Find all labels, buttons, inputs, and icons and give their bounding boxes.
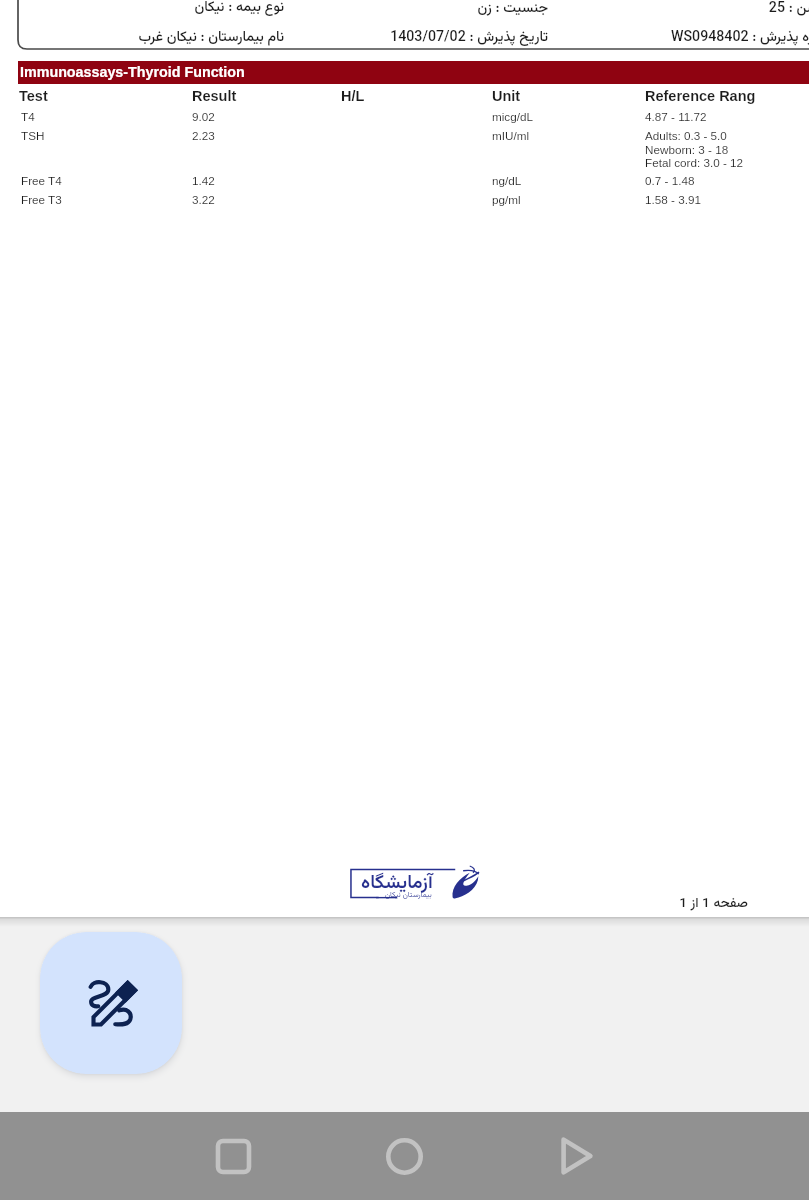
button[interactable]: Recent apps [197,1134,269,1178]
staticText: 4.87 - 11.72 [645,110,707,123]
button[interactable]: Home [368,1134,440,1178]
staticText: نام بیمارستان : نیکان غرب [0,26,284,48]
staticText: ng/dL [492,174,522,187]
staticText: mIU/ml [492,129,530,142]
staticText: بیمارستان نیکان [385,889,432,901]
button[interactable]: Back [541,1134,613,1178]
staticText: TSH [21,129,45,142]
staticText: صفحه 1 از 1 [328,893,748,914]
staticText: Test [19,88,48,104]
staticText: Free T3 [21,193,62,206]
staticText: Newborn: 3 - 18 [645,143,729,156]
staticText: 0.7 - 1.48 [645,174,695,187]
staticText: Fetal cord: 3.0 - 12 [645,156,744,169]
staticText: Result [192,88,237,104]
staticText: pg/ml [492,193,521,206]
button[interactable]: Edit with pen [40,932,182,1074]
staticText: سن : 25 [398,0,809,19]
staticText: T4 [21,110,35,123]
staticText: 1.42 [192,174,215,187]
staticText: 1.58 - 3.91 [645,193,701,206]
staticText: جنسیت : زن [128,0,548,19]
staticText: Free T4 [21,174,62,187]
staticText: H/L [341,88,365,104]
staticText: Immunoassays-Thyroid Function [20,64,245,80]
staticText: شماره پذیرش : WS0948402 [416,26,809,48]
staticText: 9.02 [192,110,215,123]
staticText: تاریخ پذیرش : 1403/07/02 [128,26,548,48]
staticText: نوع بیمه : نیکان [0,0,284,18]
staticText: Reference Rang [645,88,756,104]
staticText: آزمایشگاه [361,869,433,899]
staticText: 3.22 [192,193,215,206]
staticText: micg/dL [492,110,533,123]
staticText: Unit [492,88,521,104]
staticText: 2.23 [192,129,215,142]
staticText: Adults: 0.3 - 5.0 [645,129,727,142]
